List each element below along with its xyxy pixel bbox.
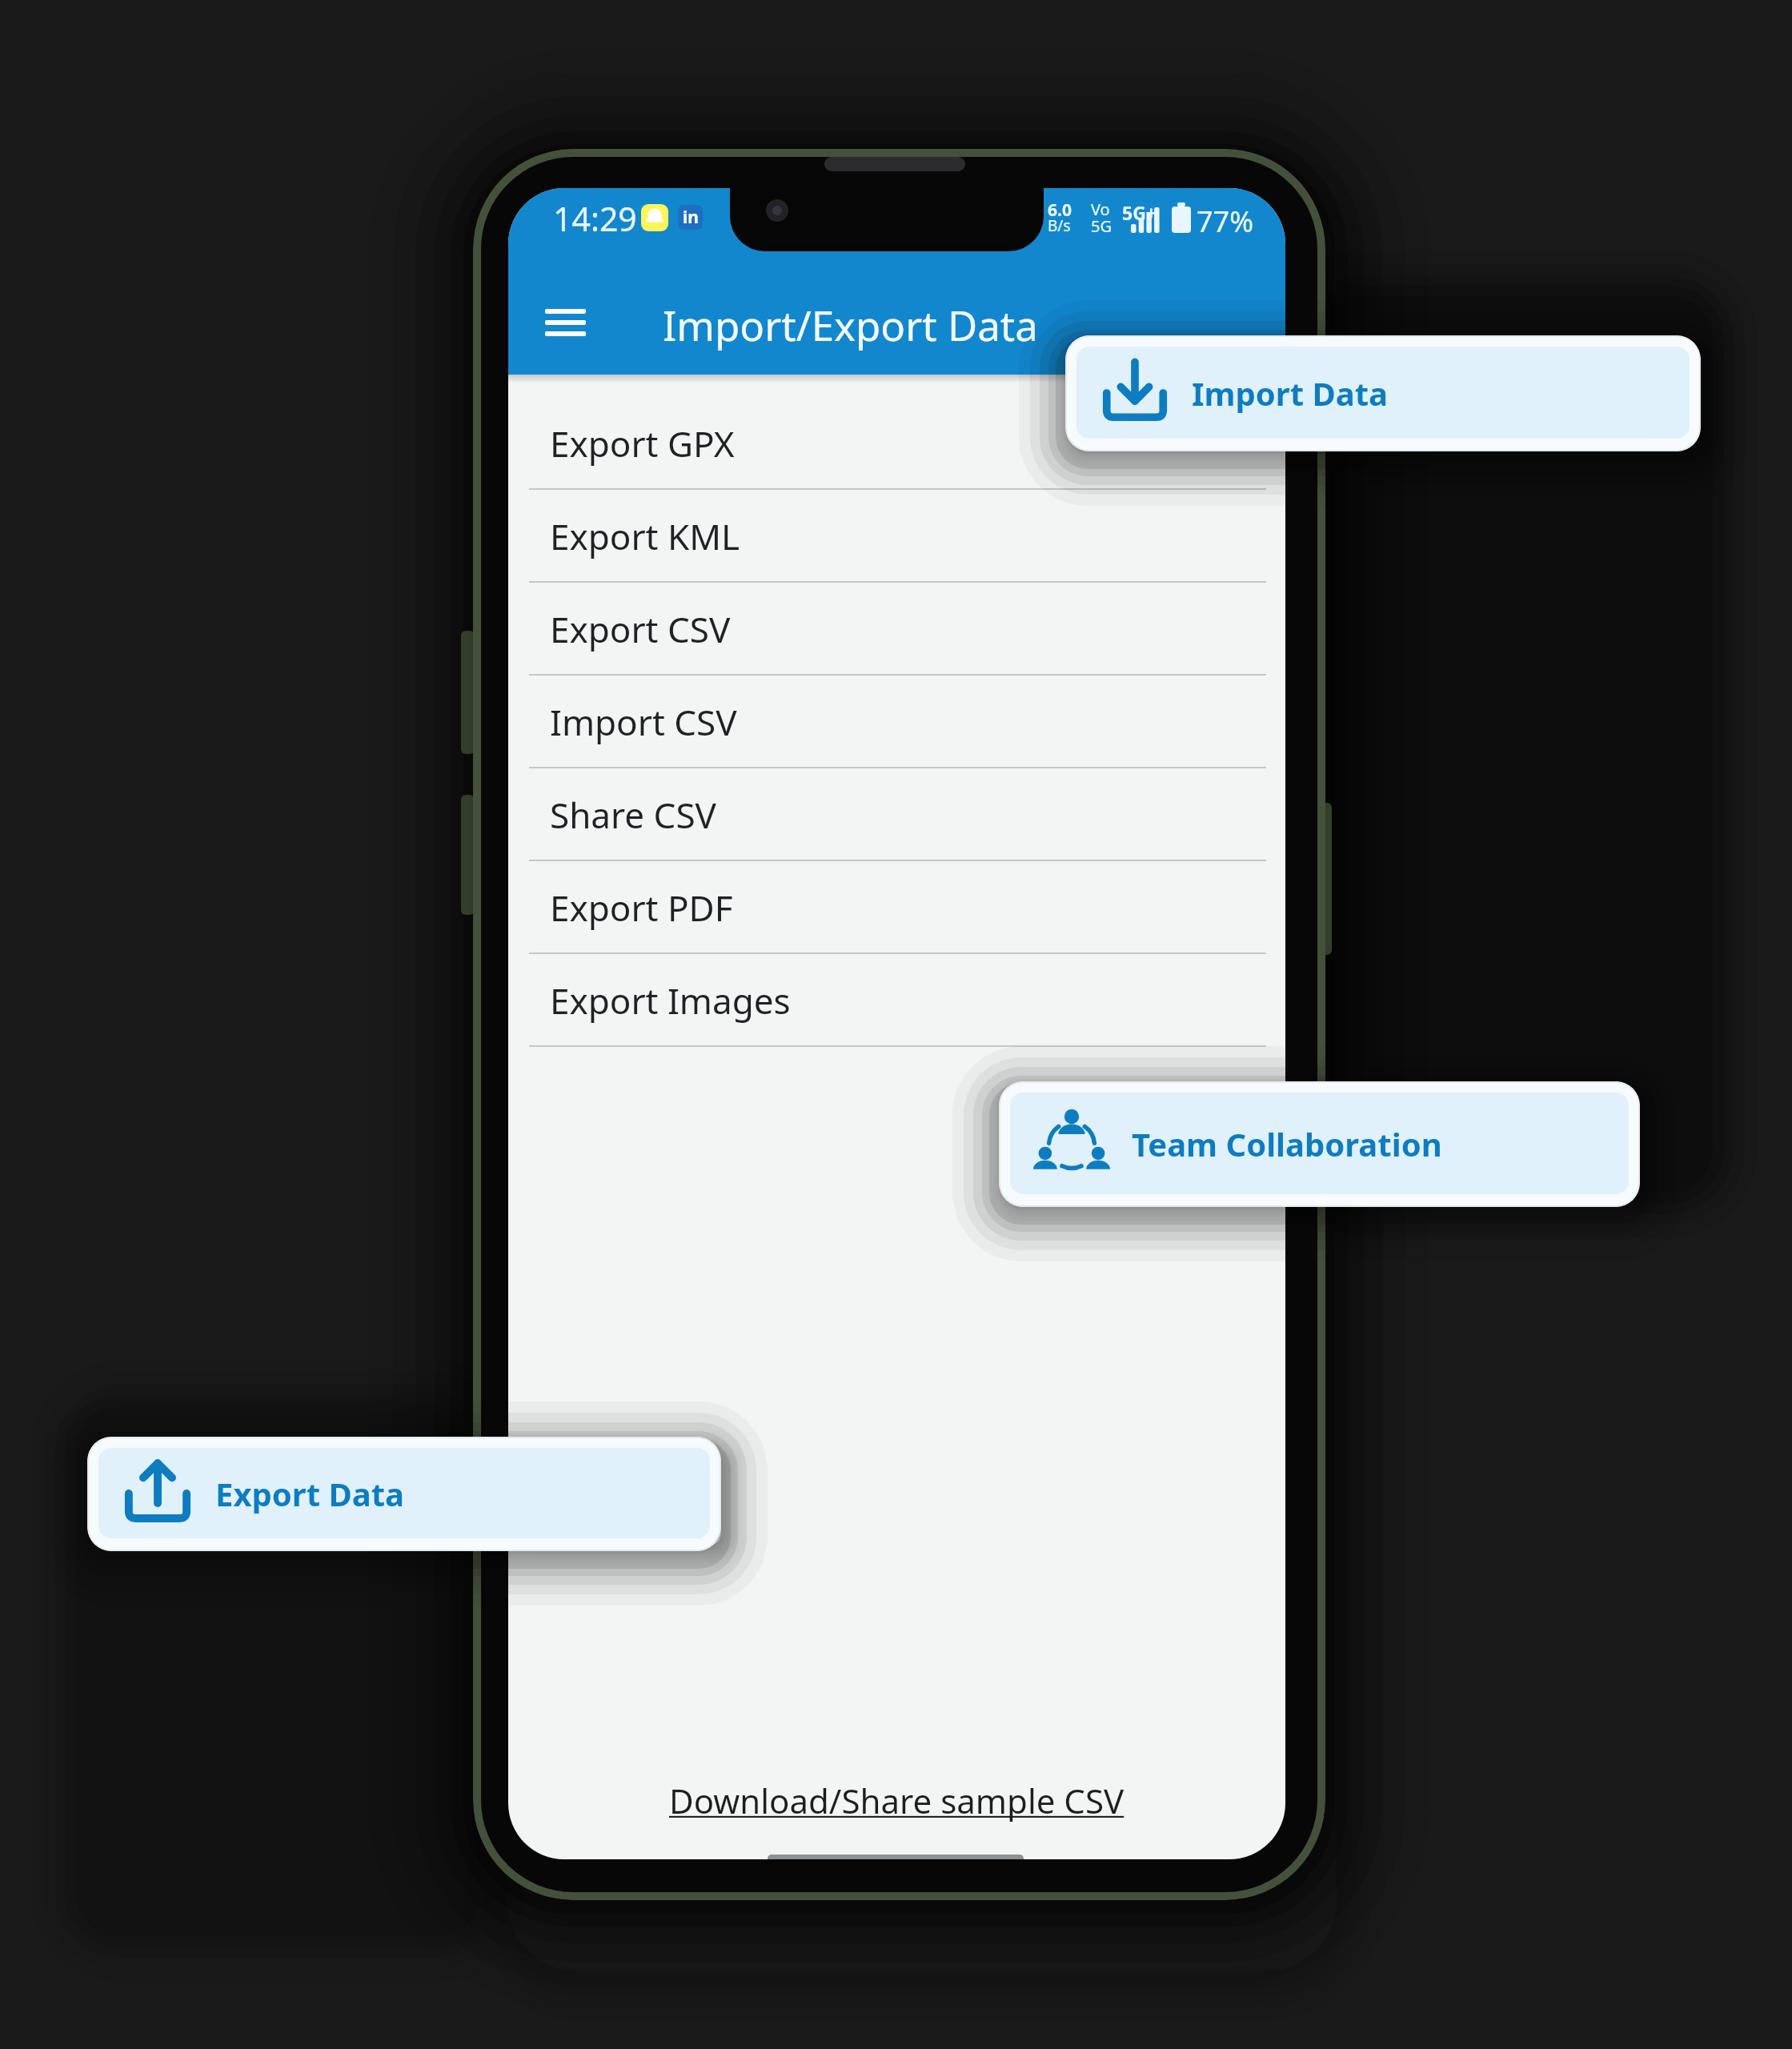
button[interactable]: Export Images [508,954,1285,1047]
staticText: Import/Export Data [663,297,1038,352]
button[interactable]: Import Data [1065,335,1701,451]
staticText: 14:29 [553,196,637,241]
button[interactable]: Export GPX [508,397,1285,490]
staticText: in [683,206,699,229]
staticText: Vo [1091,198,1110,220]
staticText: Team Collaboration [1132,1122,1442,1165]
staticText: Export PDF [550,884,733,932]
button[interactable]: Import CSV [508,676,1285,768]
staticText: Export Images [550,976,791,1024]
staticText: Import CSV [550,698,737,746]
staticText: 77% [1197,202,1254,241]
staticText: B/s [1048,215,1071,236]
staticText: Share CSV [550,791,716,839]
button[interactable]: Export Data [87,1437,721,1551]
staticText: Export GPX [550,419,735,467]
staticText: Import Data [1192,371,1389,415]
button[interactable]: Export PDF [508,861,1285,954]
staticText: Export Data [215,1472,404,1515]
staticText: 6.0 [1048,198,1072,222]
staticText: 5G [1091,215,1112,237]
button[interactable]: Export KML [508,490,1285,583]
staticText: Export KML [550,512,740,560]
button[interactable]: Team Collaboration [999,1081,1640,1207]
button[interactable]: Share CSV [508,768,1285,861]
staticText: 5G+ [1122,200,1157,225]
staticText: Export CSV [550,605,731,653]
button[interactable]: Export CSV [508,583,1285,676]
button[interactable] [545,309,586,337]
button[interactable]: Download/Share sample CSV [669,1778,1125,1823]
